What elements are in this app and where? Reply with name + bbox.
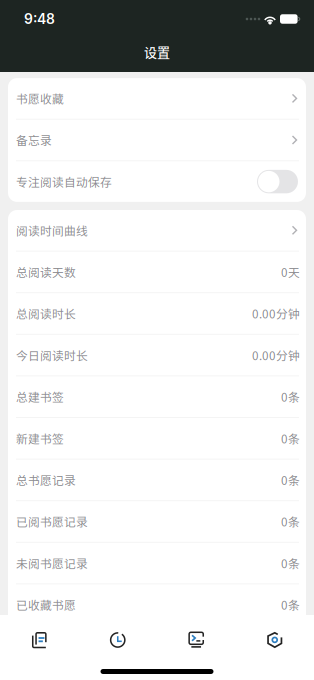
button[interactable]: 时间 [78, 615, 157, 665]
button[interactable]: 书愿收藏 [8, 78, 306, 119]
staticText: 0.00分钟 [252, 347, 300, 364]
staticText: 总阅读天数 [16, 263, 76, 280]
staticText: 已收藏书愿 [16, 596, 76, 613]
staticText: 总书愿记录 [16, 471, 76, 488]
staticText: 已阅书愿记录 [16, 513, 88, 530]
staticText: 设置 [144, 42, 170, 61]
staticText: 0.00分钟 [252, 305, 300, 322]
staticText: 新建书签 [16, 430, 64, 447]
staticText: 0条 [281, 388, 300, 405]
staticText: 0条 [281, 513, 300, 530]
staticText: 阅读时间曲线 [16, 222, 88, 239]
staticText: 0条 [281, 430, 300, 447]
staticText: 0天 [281, 263, 300, 280]
button[interactable]: 备忘录 [8, 120, 306, 160]
staticText: 0条 [281, 555, 300, 572]
staticText: 未阅书愿记录 [16, 555, 88, 572]
staticText: 书愿收藏 [16, 90, 64, 107]
staticText: 0条 [281, 471, 300, 488]
button[interactable]: 阅读 [0, 615, 78, 665]
staticText: 总阅读时长 [16, 305, 76, 322]
staticText: 总建书签 [16, 388, 64, 405]
staticText: 0条 [281, 596, 300, 613]
staticText: 专注阅读自动保存 [16, 173, 112, 190]
button[interactable]: 终端 [157, 615, 235, 665]
button[interactable]: 阅读时间曲线 [8, 210, 306, 251]
staticText: 备忘录 [16, 131, 52, 148]
button[interactable]: 专注阅读自动保存 [257, 170, 298, 193]
staticText: 今日阅读时长 [16, 347, 88, 364]
button[interactable]: 设置 [235, 615, 314, 665]
staticText: 9:48 [24, 11, 55, 27]
